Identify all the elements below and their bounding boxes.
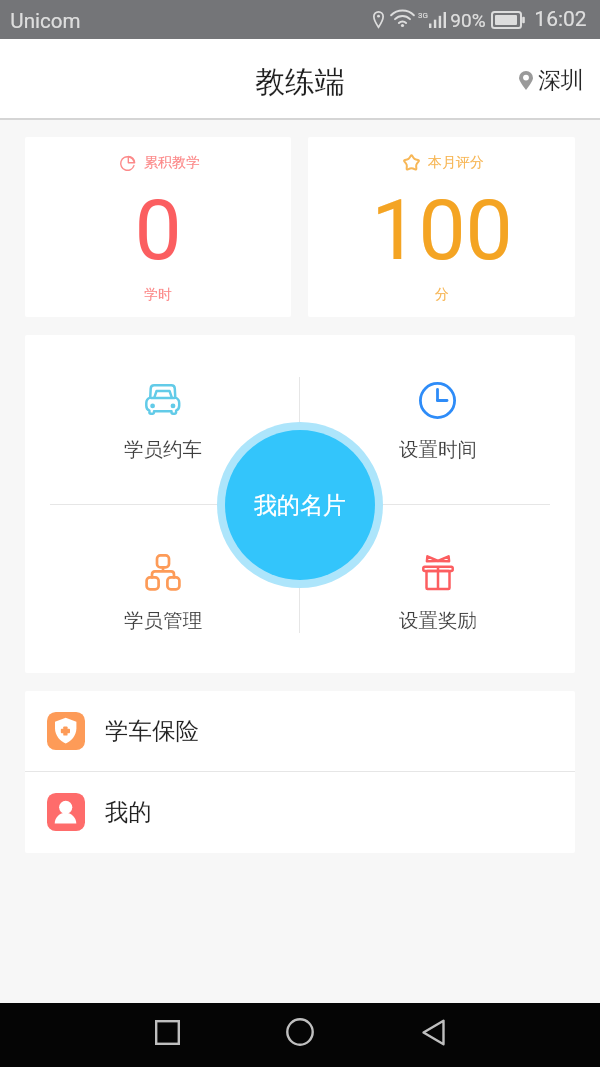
staticText: 0 bbox=[134, 181, 182, 279]
staticText: 分 bbox=[435, 286, 449, 304]
button[interactable]: 深圳 bbox=[517, 60, 586, 101]
button[interactable]: Back bbox=[411, 1010, 455, 1054]
staticText: 我的 bbox=[105, 797, 152, 827]
button[interactable]: 学车保险 bbox=[25, 691, 575, 771]
button[interactable]: 学员约车 bbox=[25, 335, 300, 502]
staticText: 学员约车 bbox=[124, 437, 202, 462]
button[interactable]: 学员管理 bbox=[25, 506, 300, 673]
staticText: 学员管理 bbox=[124, 608, 202, 633]
staticText: 设置奖励 bbox=[399, 608, 477, 633]
staticText: 16:02 bbox=[534, 7, 587, 32]
staticText: 深圳 bbox=[538, 66, 584, 95]
staticText: 学时 bbox=[144, 286, 172, 304]
staticText: 累积教学 bbox=[144, 154, 200, 172]
staticText: Unicom bbox=[10, 9, 81, 33]
button[interactable]: 我的 bbox=[25, 772, 575, 852]
button[interactable]: 累积教学 bbox=[25, 137, 291, 317]
staticText: 100 bbox=[371, 181, 513, 279]
staticText: 3G bbox=[418, 11, 428, 20]
staticText: 设置时间 bbox=[399, 437, 477, 462]
staticText: 我的名片 bbox=[254, 491, 346, 520]
staticText: 教练端 bbox=[255, 63, 345, 101]
button[interactable]: Home bbox=[278, 1010, 322, 1054]
button[interactable]: 设置时间 bbox=[300, 335, 575, 502]
staticText: 学车保险 bbox=[105, 716, 199, 746]
button[interactable]: Recent apps bbox=[145, 1010, 189, 1054]
button[interactable]: 我的名片 bbox=[225, 430, 375, 580]
button[interactable]: 设置奖励 bbox=[300, 506, 575, 673]
staticText: 本月评分 bbox=[428, 154, 484, 172]
button[interactable]: 本月评分 bbox=[308, 137, 575, 317]
staticText: 90% bbox=[450, 9, 486, 31]
